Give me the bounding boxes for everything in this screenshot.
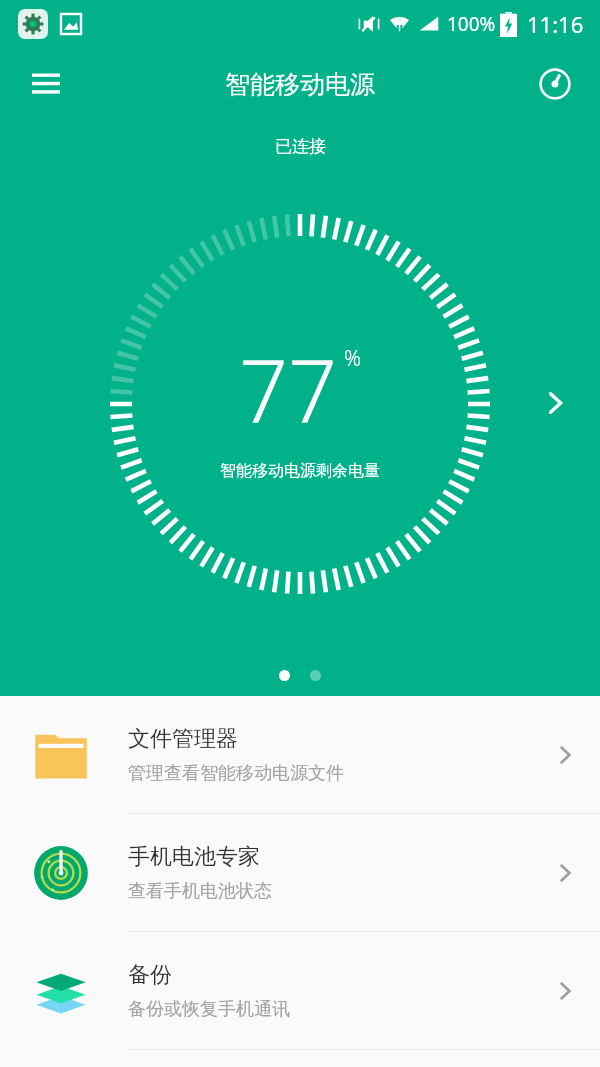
staticText: 备份或恢复手机通讯 [128,998,290,1021]
staticText: 智能移动电源 [225,69,375,100]
staticText: 100% [447,11,496,37]
button[interactable]: Menu [20,58,72,110]
staticText: 已连接 [275,136,326,157]
staticText: % [344,344,362,373]
staticText: 文件管理器 [128,725,238,753]
staticText: 管理查看智能移动电源文件 [128,762,344,785]
staticText: 备份 [128,961,172,989]
staticText: 77 [239,330,338,447]
button[interactable]: 备份 [0,932,600,1050]
button[interactable]: 手机电池专家 [0,814,600,932]
staticText: 智能移动电源剩余电量 [220,461,380,481]
staticText: 11:16 [527,9,584,39]
staticText: 手机电池专家 [128,843,260,871]
staticText: 查看手机电池状态 [128,880,272,903]
button[interactable]: Next page [530,378,580,428]
button[interactable]: 文件管理器 [0,696,600,814]
button[interactable]: Device status [530,59,580,109]
